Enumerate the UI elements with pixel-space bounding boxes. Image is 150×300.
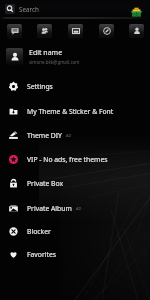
staticText: Settings (27, 82, 53, 91)
button[interactable]: VIP - No ads, free themes (0, 147, 150, 171)
staticText: Theme DIY (27, 131, 62, 140)
staticText: AD (76, 206, 82, 211)
button[interactable]: Gift (131, 7, 142, 18)
button[interactable]: Theme DIY (0, 123, 150, 147)
button[interactable]: Settings (0, 74, 150, 98)
staticText: simone.bkk@gmail.com (29, 59, 80, 65)
button[interactable]: Calendar (68, 24, 83, 38)
staticText: Private Album (27, 204, 72, 213)
staticText: Blocker (27, 227, 51, 236)
button[interactable]: Private Box (0, 171, 150, 195)
staticText: Search (19, 5, 39, 14)
button[interactable]: Profile (129, 24, 144, 38)
button[interactable]: Browser (99, 24, 114, 38)
staticText: Favorites (27, 250, 57, 259)
button[interactable]: Search (0, 0, 150, 18)
staticText: Private Box (27, 179, 63, 188)
button[interactable]: Contacts (37, 24, 52, 38)
staticText: VIP - No ads, free themes (27, 155, 108, 164)
staticText: My Theme & Sticker & Font (27, 107, 114, 116)
staticText: AD (66, 133, 72, 138)
button[interactable]: Messages (7, 24, 22, 38)
button[interactable]: Blocker (0, 219, 150, 243)
button[interactable]: Edit name (0, 45, 150, 68)
button[interactable]: Private Album (0, 196, 150, 220)
button[interactable]: Favorites (0, 242, 150, 266)
staticText: Edit name (29, 48, 63, 58)
button[interactable]: My Theme & Sticker & Font (0, 99, 150, 123)
